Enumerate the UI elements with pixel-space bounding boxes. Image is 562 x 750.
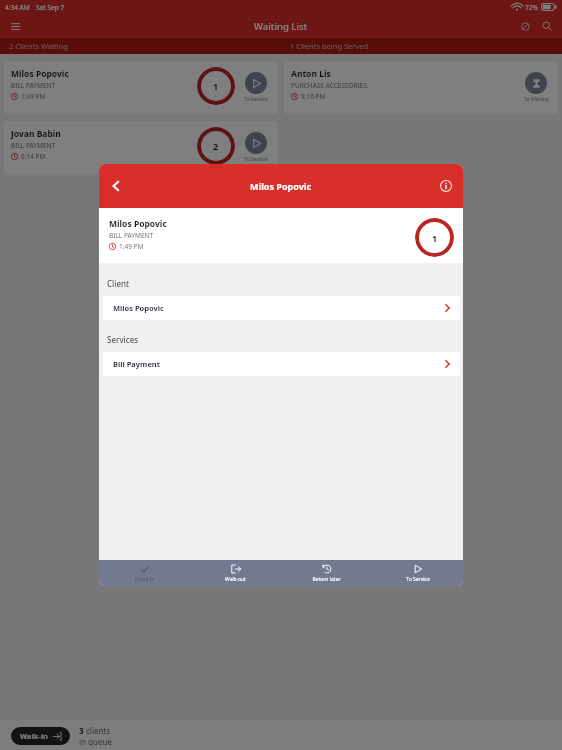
button[interactable]: Info (434, 174, 458, 198)
button[interactable]: To Service (372, 560, 463, 586)
button[interactable]: Bill Payment (103, 352, 460, 376)
staticText: To Service (406, 576, 430, 583)
staticText: Milos Popovic (113, 303, 164, 313)
staticText: Anton Lis (291, 68, 331, 80)
staticText: Sat Sep 7 (36, 3, 65, 12)
staticText: BILL PAYMENT (11, 81, 56, 90)
staticText: Walk-out (225, 576, 246, 583)
staticText: Jovan Babin (11, 128, 61, 140)
staticText: 9:16 PM (301, 92, 326, 101)
staticText: Milos Popovic (11, 68, 69, 80)
button[interactable]: 2 Clients Waiting (0, 38, 281, 54)
staticText: Client (107, 278, 130, 289)
staticText: PURCHASE ACCESSORIES (291, 81, 368, 90)
staticText: 72% (525, 3, 538, 12)
staticText: Bill Payment (113, 359, 161, 369)
staticText: Waiting List (254, 20, 308, 33)
button[interactable]: Back (104, 174, 128, 198)
staticText: 6:14 PM (21, 152, 46, 161)
staticText: To Waiting (524, 96, 549, 103)
staticText: To Service (244, 96, 268, 103)
staticText: 2 (213, 140, 219, 152)
staticText: Return later (312, 576, 341, 583)
button[interactable]: To Waiting (514, 72, 558, 103)
staticText: Milos Popovic (109, 218, 167, 230)
staticText: in queue (79, 736, 112, 747)
staticText: 1:49 PM (21, 92, 46, 101)
staticText: To Service (244, 156, 268, 163)
staticText: 1 (432, 232, 438, 244)
staticText: Services (107, 334, 139, 345)
button[interactable]: Milos Popovic (103, 296, 460, 320)
staticText: 3 (79, 725, 86, 736)
button[interactable]: 1 Clients being Served (281, 38, 562, 54)
button[interactable]: Milos Popovic (4, 61, 278, 114)
staticText: Check In (134, 576, 155, 583)
button[interactable]: To Service (234, 72, 278, 103)
button[interactable]: Return later (281, 560, 372, 586)
button[interactable]: To Service (234, 132, 278, 163)
staticText: BILL PAYMENT (11, 141, 56, 150)
staticText: Milos Popovic (250, 180, 312, 192)
button[interactable]: Check In (99, 560, 190, 586)
staticText: clients (86, 725, 111, 736)
staticText: 1 Clients being Served (290, 41, 369, 51)
button[interactable]: Anton Lis (284, 61, 558, 114)
staticText: Walk-in (20, 731, 48, 741)
staticText: 4:34 AM (5, 3, 30, 12)
staticText: BILL PAYMENT (109, 231, 154, 240)
button[interactable]: Search (536, 15, 558, 37)
button[interactable]: Jovan Babin (4, 121, 278, 174)
staticText: 2 Clients Waiting (9, 41, 68, 51)
staticText: 1 (213, 80, 219, 92)
button[interactable]: Walk-out (190, 560, 281, 586)
button[interactable]: Walk-in (11, 727, 70, 745)
button[interactable]: Do not disturb (514, 15, 536, 37)
button[interactable]: Menu (4, 15, 26, 37)
staticText: 1:49 PM (119, 242, 144, 251)
